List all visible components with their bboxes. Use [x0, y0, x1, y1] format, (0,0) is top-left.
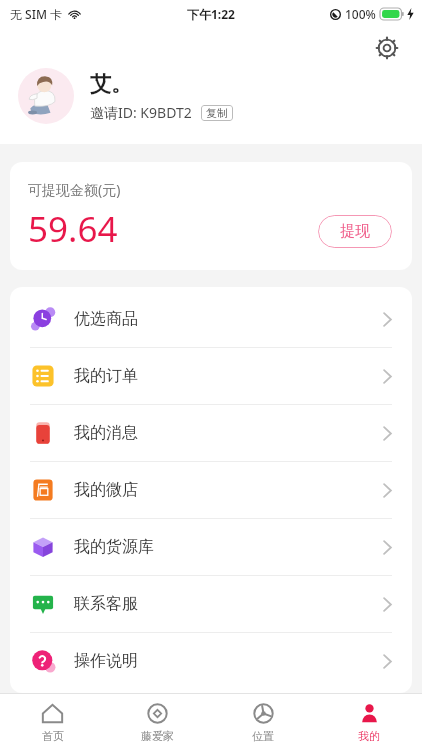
- staticText: 下午1:22: [187, 6, 235, 22]
- staticText: 艾。: [90, 71, 132, 97]
- button[interactable]: 复制: [201, 105, 233, 121]
- staticText: 我的订单: [74, 366, 138, 386]
- button[interactable]: 首页: [0, 694, 105, 750]
- button[interactable]: 我的订单: [10, 348, 412, 404]
- staticText: 优选商品: [74, 309, 138, 329]
- button[interactable]: 提现: [318, 215, 392, 248]
- staticText: 邀请ID: K9BDT2: [90, 103, 192, 122]
- button[interactable]: 我的: [316, 694, 422, 750]
- staticText: 操作说明: [74, 651, 138, 671]
- staticText: 我的微店: [74, 480, 138, 500]
- button[interactable]: 联系客服: [10, 576, 412, 632]
- button[interactable]: 我的消息: [10, 405, 412, 461]
- staticText: 100%: [345, 6, 376, 22]
- staticText: 复制: [206, 106, 228, 120]
- staticText: 位置: [252, 729, 274, 743]
- staticText: 首页: [42, 729, 64, 743]
- staticText: 可提现金额(元): [28, 180, 121, 199]
- staticText: 我的: [358, 729, 380, 743]
- button[interactable]: 操作说明: [10, 633, 412, 689]
- staticText: 我的货源库: [74, 537, 154, 557]
- staticText: 我的消息: [74, 423, 138, 443]
- staticText: 藤爱家: [141, 729, 174, 743]
- staticText: 提现: [340, 222, 370, 241]
- staticText: 无 SIM 卡: [10, 6, 63, 22]
- button[interactable]: 藤爱家: [105, 694, 210, 750]
- button[interactable]: 优选商品: [10, 291, 412, 347]
- button[interactable]: 我的微店: [10, 462, 412, 518]
- staticText: 59.64: [28, 205, 118, 253]
- staticText: 联系客服: [74, 594, 138, 614]
- button[interactable]: 我的货源库: [10, 519, 412, 575]
- button[interactable]: Profile avatar: [18, 68, 74, 124]
- button[interactable]: 位置: [210, 694, 316, 750]
- button[interactable]: Settings: [372, 33, 402, 63]
